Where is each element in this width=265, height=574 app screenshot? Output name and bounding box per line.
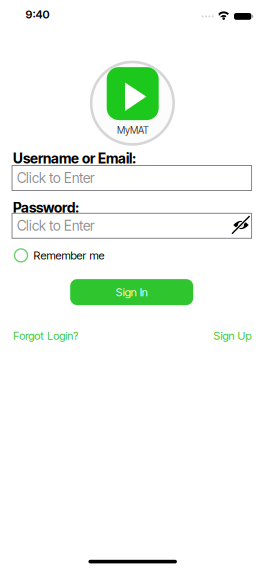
button[interactable]: Show password <box>230 214 252 236</box>
button[interactable]: Remember me <box>14 249 104 262</box>
staticText: 9:40 <box>25 8 49 21</box>
button[interactable]: Sign Up <box>213 329 251 342</box>
staticText: Click to Enter <box>17 217 95 234</box>
staticText: Forgot Login? <box>13 329 78 342</box>
staticText: Password: <box>13 199 79 216</box>
button[interactable]: Password <box>12 213 252 238</box>
staticText: MyMAT <box>117 124 149 136</box>
button[interactable]: Sign In <box>70 279 193 305</box>
staticText: Sign Up <box>213 329 251 342</box>
button[interactable]: Forgot Login? <box>13 329 78 342</box>
staticText: Sign In <box>116 285 148 299</box>
button[interactable]: Username or Email <box>12 165 252 190</box>
staticText: Remember me <box>33 249 104 262</box>
staticText: Click to Enter <box>17 170 95 186</box>
staticText: Username or Email: <box>13 150 136 167</box>
